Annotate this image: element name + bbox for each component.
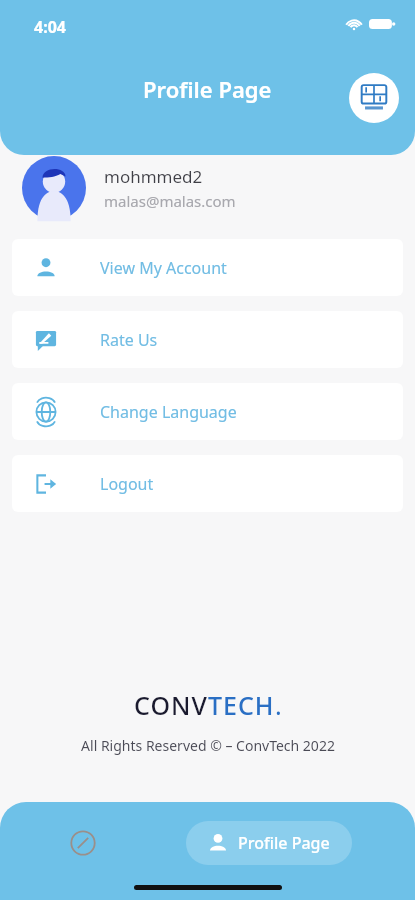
button[interactable]: Home [0, 818, 165, 868]
staticText: 4:04 [34, 16, 66, 38]
staticText: All Rights Reserved © – ConvTech 2022 [81, 736, 335, 755]
button[interactable]: View My Account [12, 239, 403, 296]
staticText: Rate Us [100, 329, 158, 351]
staticText: Profile Page [238, 832, 330, 854]
button[interactable]: ConvTech logo [349, 73, 399, 123]
staticText: View My Account [100, 257, 227, 279]
button[interactable]: Rate Us [12, 311, 403, 368]
button[interactable]: Profile Page [186, 821, 352, 865]
staticText: Change Language [100, 401, 237, 423]
staticText: malas@malas.com [104, 191, 236, 211]
staticText: Logout [100, 473, 154, 495]
staticText: . [275, 688, 282, 722]
staticText: TECH [208, 688, 275, 722]
staticText: Profile Page [143, 74, 272, 104]
button[interactable]: Change Language [12, 383, 403, 440]
staticText: CONV [134, 688, 208, 722]
button[interactable]: Logout [12, 455, 403, 512]
staticText: mohmmed2 [104, 165, 203, 188]
